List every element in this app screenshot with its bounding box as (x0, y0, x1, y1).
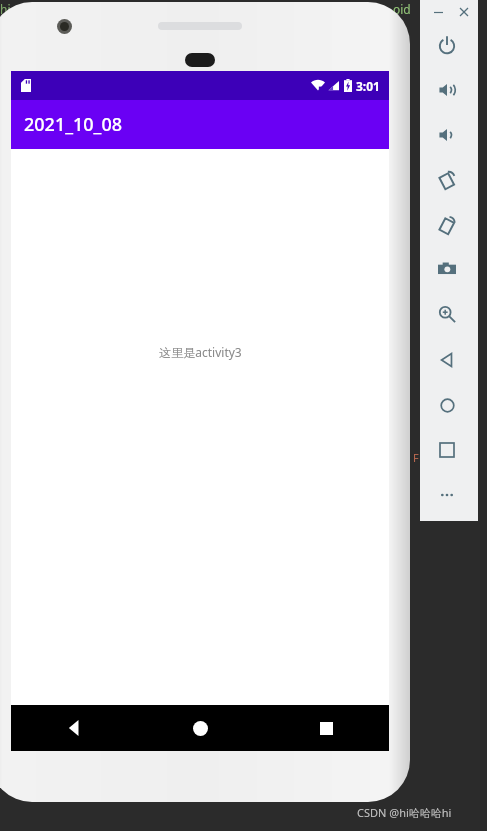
staticText: 3:01 (356, 78, 380, 94)
button[interactable]: Take screenshot (432, 254, 462, 284)
button[interactable]: Rotate left (432, 165, 462, 195)
staticText: hi (0, 1, 11, 17)
staticText: F (413, 450, 419, 465)
button[interactable]: Minimize (428, 2, 448, 22)
staticText: oid (393, 1, 411, 17)
staticText: 这里是activity3 (159, 344, 242, 360)
button[interactable]: 2021_10_08 (11, 100, 389, 149)
button[interactable]: Home (432, 390, 462, 420)
staticText: 2021_10_08 (24, 112, 122, 137)
button[interactable]: Rotate right (432, 210, 462, 240)
button[interactable]: More (432, 480, 462, 510)
button[interactable]: Recent apps (263, 705, 389, 751)
button[interactable]: Overview (432, 435, 462, 465)
staticText: CSDN @hi哈哈哈hi (357, 805, 452, 820)
button[interactable]: Volume up (432, 75, 462, 105)
button[interactable]: Back (11, 705, 137, 751)
button[interactable]: Zoom (432, 299, 462, 329)
button[interactable]: Back (432, 345, 462, 375)
button[interactable]: Close (454, 2, 474, 22)
button[interactable]: Power (432, 30, 462, 60)
button[interactable]: Volume down (432, 120, 462, 150)
button[interactable]: Home (137, 705, 263, 751)
